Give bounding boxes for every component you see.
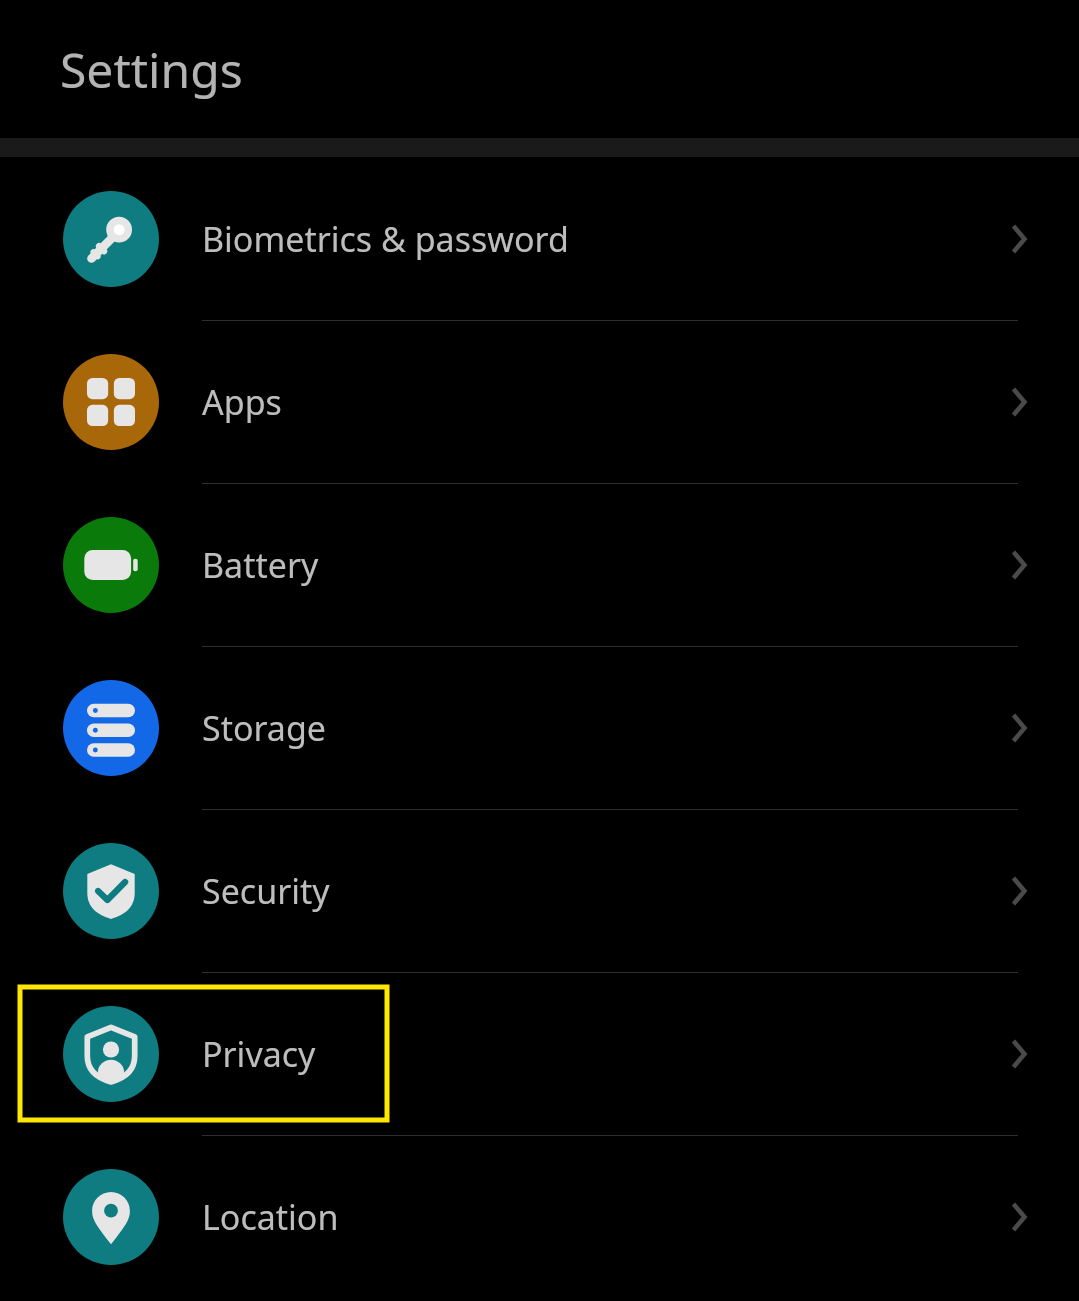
button[interactable]: Apps — [0, 320, 1079, 483]
button[interactable]: Privacy — [0, 972, 1079, 1135]
staticText: Security — [202, 868, 330, 914]
staticText: Battery — [202, 542, 319, 588]
staticText: Apps — [202, 379, 282, 425]
button[interactable]: Biometrics & password — [0, 157, 1079, 320]
button[interactable]: Battery — [0, 483, 1079, 646]
staticText: Location — [202, 1194, 339, 1240]
staticText: Storage — [202, 705, 327, 751]
staticText: Biometrics & password — [202, 216, 569, 262]
button[interactable]: Location — [0, 1135, 1079, 1298]
staticText: Settings — [60, 37, 243, 102]
button[interactable]: Security — [0, 809, 1079, 972]
staticText: Privacy — [202, 1031, 316, 1077]
button[interactable]: Storage — [0, 646, 1079, 809]
